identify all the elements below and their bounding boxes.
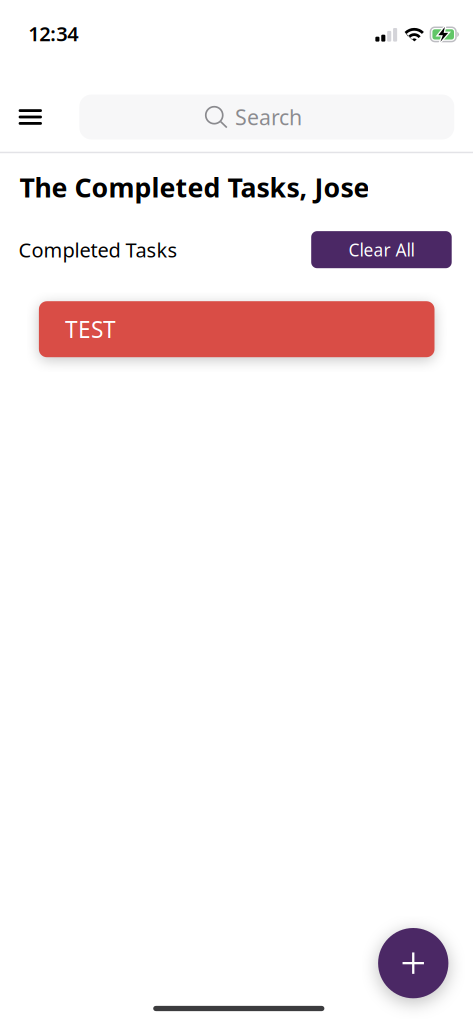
button[interactable]: Search: [79, 94, 454, 139]
button[interactable]: TEST: [39, 301, 434, 357]
staticText: 12:34: [28, 20, 78, 47]
button[interactable]: Add task: [378, 928, 448, 998]
staticText: Completed Tasks: [18, 236, 177, 263]
staticText: TEST: [65, 314, 116, 345]
button[interactable]: Menu: [7, 94, 53, 139]
button[interactable]: Clear All: [311, 231, 452, 268]
staticText: Clear All: [348, 238, 414, 261]
staticText: The Completed Tasks, Jose: [19, 169, 369, 205]
staticText: Search: [235, 102, 302, 132]
